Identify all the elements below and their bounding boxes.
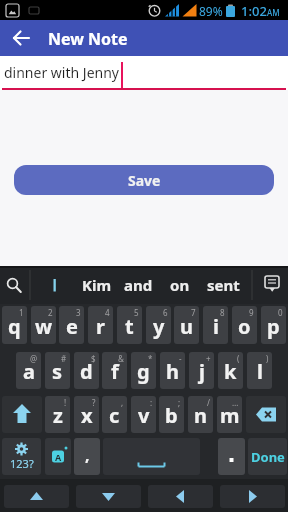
staticText: Done	[251, 448, 285, 466]
staticText: 2	[48, 307, 53, 318]
button[interactable]: v	[131, 396, 156, 433]
staticText: !	[64, 397, 67, 408]
staticText: y	[153, 313, 165, 340]
button[interactable]	[148, 485, 213, 508]
button[interactable]: x	[74, 396, 99, 433]
staticText: u	[180, 313, 193, 340]
button[interactable]: 123?	[2, 438, 41, 475]
staticText: &	[118, 353, 124, 364]
button[interactable]	[103, 438, 200, 475]
button[interactable]: q	[2, 306, 27, 344]
staticText: @	[30, 353, 38, 364]
staticText: c	[109, 402, 120, 429]
staticText: A	[55, 451, 62, 463]
staticText: w	[35, 313, 53, 340]
staticText: a	[23, 358, 35, 385]
staticText: $	[91, 353, 96, 364]
button[interactable]: y	[146, 306, 171, 344]
staticText: dinner with Jenny	[4, 63, 119, 82]
button[interactable]: j	[189, 352, 214, 389]
staticText: (	[237, 353, 240, 364]
button[interactable]: r	[88, 306, 113, 344]
button[interactable]: on	[162, 266, 198, 304]
staticText: /	[207, 397, 210, 408]
button[interactable]	[76, 485, 141, 508]
button[interactable]: z	[45, 396, 70, 433]
staticText: h	[166, 358, 179, 385]
staticText: n	[194, 402, 207, 429]
button[interactable]	[6, 22, 38, 54]
button[interactable]: t	[117, 306, 142, 344]
staticText: f	[111, 358, 119, 385]
staticText: t	[125, 313, 134, 340]
button[interactable]: sent	[200, 266, 244, 304]
button[interactable]: p	[261, 306, 286, 344]
staticText: r	[96, 313, 105, 340]
staticText: k	[224, 358, 237, 385]
button[interactable]: u	[174, 306, 199, 344]
button[interactable]	[2, 396, 42, 433]
staticText: :	[150, 397, 153, 408]
staticText: *	[148, 353, 153, 364]
staticText: j	[199, 358, 205, 385]
staticText: b	[165, 402, 178, 429]
button[interactable]: g	[131, 352, 156, 389]
staticText: ,	[121, 397, 124, 408]
button[interactable]: Kim	[76, 266, 118, 304]
staticText: 1:02	[241, 2, 267, 20]
staticText: s	[52, 358, 63, 385]
staticText: 4	[105, 307, 110, 318]
button[interactable]: A	[45, 438, 71, 475]
button[interactable]	[0, 56, 288, 90]
button[interactable]	[246, 396, 286, 433]
button[interactable]	[4, 485, 69, 508]
staticText: p	[267, 313, 280, 340]
staticText: g	[137, 358, 150, 385]
button[interactable]	[0, 266, 30, 304]
button[interactable]: o	[232, 306, 257, 344]
button[interactable]: a	[16, 352, 41, 389]
staticText: #	[61, 353, 67, 364]
button[interactable]: k	[218, 352, 243, 389]
button[interactable]: c	[102, 396, 127, 433]
staticText: and	[124, 275, 153, 295]
button[interactable]: i	[203, 306, 228, 344]
staticText: 6	[163, 307, 168, 318]
button[interactable]: e	[59, 306, 84, 344]
staticText: l	[257, 358, 263, 385]
staticText: 5	[134, 307, 139, 318]
staticText: z	[53, 402, 63, 429]
staticText: 1	[19, 307, 24, 318]
button[interactable]: Done	[248, 438, 287, 475]
staticText: o	[238, 313, 251, 340]
staticText: …	[232, 397, 239, 408]
staticText: ?	[92, 397, 96, 408]
button[interactable]: l	[247, 352, 272, 389]
button[interactable]: s	[45, 352, 70, 389]
staticText: d	[80, 358, 93, 385]
staticText: ,	[85, 444, 90, 466]
button[interactable]: d	[74, 352, 99, 389]
button[interactable]	[218, 438, 245, 475]
button[interactable]: and	[118, 266, 158, 304]
button[interactable]	[256, 266, 288, 304]
button[interactable]: ,	[74, 438, 100, 475]
button[interactable]	[220, 485, 285, 508]
staticText: Kim	[82, 275, 112, 295]
staticText: 9	[249, 307, 254, 318]
staticText: e	[66, 313, 78, 340]
button[interactable]: b	[159, 396, 184, 433]
button[interactable]: Save	[14, 165, 274, 195]
staticText: x	[81, 402, 93, 429]
staticText: 3	[76, 307, 81, 318]
button[interactable]: h	[160, 352, 185, 389]
staticText: AM	[267, 7, 280, 18]
button[interactable]: m	[217, 396, 242, 433]
staticText: sent	[207, 275, 240, 295]
staticText: -	[179, 353, 182, 364]
staticText: New Note	[48, 28, 128, 50]
staticText: m	[220, 402, 240, 429]
button[interactable]: n	[188, 396, 213, 433]
button[interactable]: f	[102, 352, 127, 389]
button[interactable]: w	[31, 306, 56, 344]
